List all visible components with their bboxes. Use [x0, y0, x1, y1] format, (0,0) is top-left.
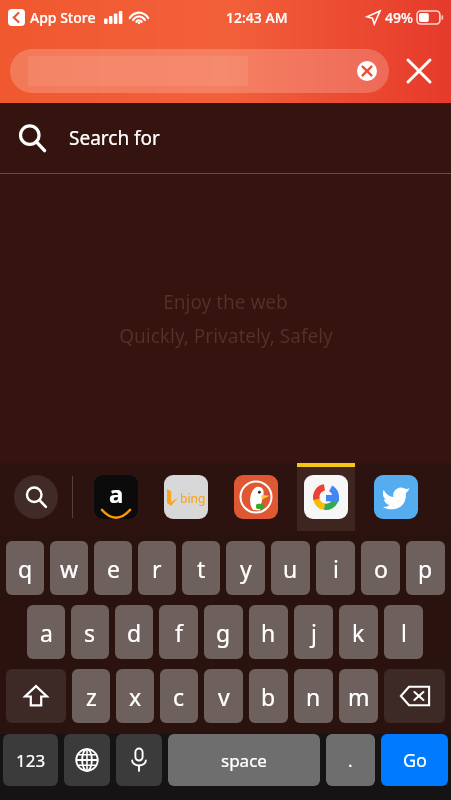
button[interactable]: y [226, 541, 265, 595]
button[interactable]: m [339, 669, 378, 723]
staticText: q [18, 553, 33, 584]
button[interactable]: Search engine [297, 463, 355, 531]
button[interactable]: Search engine [367, 463, 425, 531]
button[interactable]: x [116, 669, 154, 723]
staticText: Quickly, Privately, Safely [119, 323, 333, 349]
button[interactable]: t [182, 541, 220, 595]
button[interactable]: r [138, 541, 176, 595]
button[interactable]: v [204, 669, 243, 723]
staticText: s [84, 617, 96, 648]
button[interactable]: p [406, 541, 445, 595]
button[interactable]: h [249, 605, 288, 659]
button[interactable]: l [384, 605, 423, 659]
button[interactable]: Shift [6, 669, 66, 723]
staticText: a [109, 477, 124, 510]
button[interactable]: j [294, 605, 333, 659]
button[interactable]: w [50, 541, 88, 595]
staticText: u [283, 553, 298, 584]
button[interactable]: e [94, 541, 132, 595]
button[interactable]: Search engine [87, 463, 145, 531]
staticText: b [261, 681, 276, 712]
staticText: m [348, 681, 370, 712]
staticText: o [374, 553, 388, 584]
staticText: a [40, 617, 53, 648]
staticText: t [197, 553, 206, 584]
button[interactable]: Go [381, 734, 448, 786]
button[interactable]: Search engine [227, 463, 285, 531]
staticText: g [216, 617, 231, 648]
staticText: i [333, 553, 339, 584]
staticText: l [401, 617, 407, 648]
staticText: 12:43 AM [226, 8, 288, 27]
button[interactable]: Backspace [384, 669, 445, 723]
staticText: space [221, 749, 267, 772]
staticText: p [418, 553, 433, 584]
staticText: bing [180, 490, 206, 506]
button[interactable]: . [326, 734, 375, 786]
button[interactable]: Clear [357, 61, 377, 81]
staticText: e [107, 553, 120, 584]
staticText: x [129, 681, 142, 712]
button[interactable]: space [168, 734, 320, 786]
staticText: v [218, 681, 230, 712]
button[interactable]: Search engine [157, 463, 215, 531]
staticText: h [261, 617, 276, 648]
staticText: f [175, 617, 183, 648]
staticText: c [173, 681, 185, 712]
button[interactable]: 123 [3, 734, 58, 786]
staticText: Go [403, 748, 427, 773]
staticText: App Store [30, 8, 96, 27]
staticText: j [311, 617, 317, 648]
button[interactable]: c [160, 669, 198, 723]
button[interactable]: Clear [10, 49, 389, 93]
staticText: Enjoy the web [163, 289, 288, 315]
button[interactable]: Switch keyboard [64, 734, 110, 786]
staticText: z [86, 681, 97, 712]
staticText: k [352, 617, 365, 648]
staticText: r [152, 553, 162, 584]
button[interactable]: u [271, 541, 310, 595]
staticText: w [60, 553, 79, 584]
button[interactable]: Close [397, 49, 441, 93]
button[interactable]: f [159, 605, 198, 659]
button[interactable]: Search for [0, 103, 451, 173]
button[interactable]: Search engine settings [14, 475, 58, 519]
staticText: y [240, 553, 252, 584]
staticText: Search for [69, 125, 160, 151]
button[interactable]: Dictate [116, 734, 162, 786]
button[interactable]: g [204, 605, 243, 659]
button[interactable]: k [339, 605, 378, 659]
staticText: d [127, 617, 142, 648]
button[interactable]: d [115, 605, 153, 659]
staticText: 123 [16, 749, 46, 772]
staticText: n [306, 681, 321, 712]
button[interactable]: b [249, 669, 288, 723]
button[interactable]: q [6, 541, 44, 595]
button[interactable]: o [361, 541, 400, 595]
button[interactable]: z [72, 669, 110, 723]
staticText: . [348, 749, 353, 772]
button[interactable]: s [71, 605, 109, 659]
button[interactable]: a [27, 605, 65, 659]
staticText: 49% [385, 8, 413, 27]
button[interactable]: n [294, 669, 333, 723]
button[interactable]: i [316, 541, 355, 595]
